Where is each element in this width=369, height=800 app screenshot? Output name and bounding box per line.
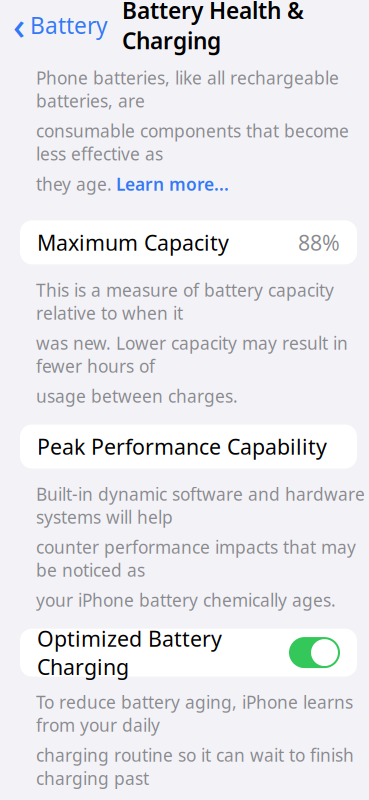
staticText: This is a measure of battery capacity re… xyxy=(36,278,334,324)
staticText: Battery xyxy=(30,10,108,40)
staticText: counter performance impacts that may be … xyxy=(36,535,356,581)
staticText: Built-in dynamic software and hardware s… xyxy=(36,482,365,528)
staticText: ‹ xyxy=(13,0,25,50)
staticText: was new. Lower capacity may result in fe… xyxy=(36,331,348,377)
staticText: Peak Performance Capability xyxy=(37,432,327,461)
staticText: usage between charges. xyxy=(36,384,238,407)
button[interactable]: ‹ xyxy=(0,0,108,54)
staticText: they age. xyxy=(36,172,112,195)
staticText: Maximum Capacity xyxy=(37,228,229,256)
staticText: consumable components that become less e… xyxy=(36,119,349,165)
button[interactable]: Learn more... xyxy=(116,172,229,195)
staticText: your iPhone battery chemically ages. xyxy=(36,589,336,612)
staticText: Learn more... xyxy=(116,172,229,195)
staticText: charging routine so it can wait to finis… xyxy=(36,744,354,790)
staticText: 88% xyxy=(298,228,340,256)
staticText: To reduce battery aging, iPhone learns f… xyxy=(36,691,353,737)
button[interactable]: Peak Performance Capability xyxy=(20,424,357,468)
staticText: Phone batteries, like all rechargeable b… xyxy=(36,66,339,112)
staticText: Optimized Battery Charging xyxy=(37,624,222,681)
button[interactable]: Optimized Battery Charging xyxy=(20,629,357,677)
button[interactable]: Maximum Capacity xyxy=(20,220,357,264)
staticText: Battery Health & Charging xyxy=(122,0,304,55)
